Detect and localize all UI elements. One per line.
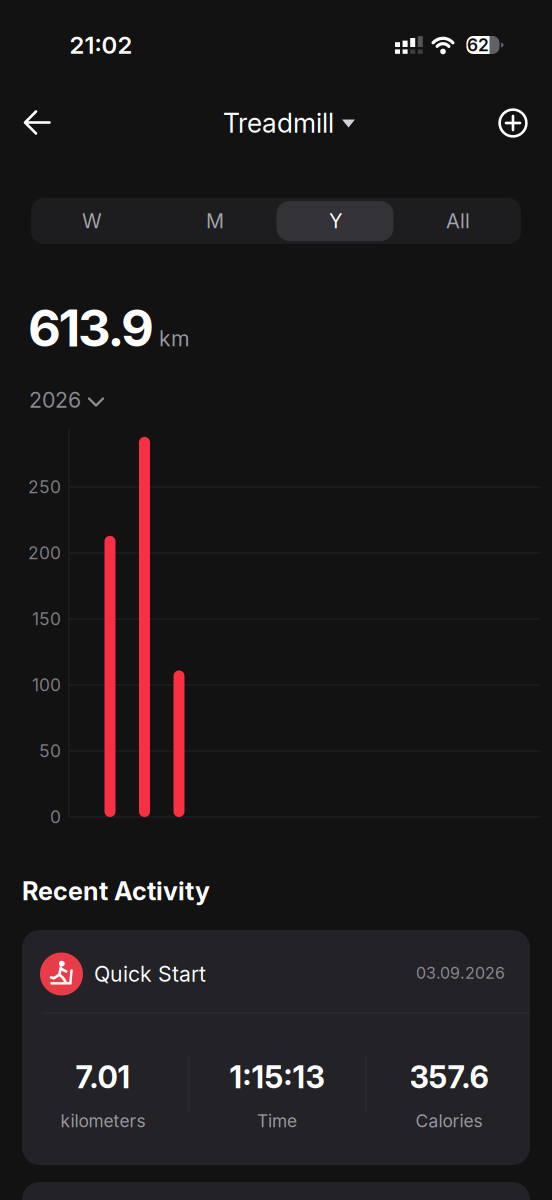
button[interactable]: W: [31, 198, 153, 244]
staticText: kilometers: [60, 1111, 145, 1131]
staticText: 357.6: [409, 1059, 488, 1095]
staticText: 1:15:13: [229, 1059, 324, 1095]
staticText: 7.01: [75, 1059, 130, 1095]
staticText: km: [159, 326, 190, 351]
staticText: 0: [50, 807, 61, 827]
staticText: 200: [28, 543, 61, 563]
staticText: All: [446, 209, 470, 233]
staticText: 03.09.2026: [416, 964, 505, 982]
staticText: Time: [257, 1111, 297, 1131]
button[interactable]: Back: [11, 98, 62, 147]
staticText: Recent Activity: [22, 876, 210, 906]
staticText: 2026: [29, 387, 81, 413]
staticText: 250: [28, 477, 61, 497]
button[interactable]: All: [397, 198, 519, 244]
staticText: 100: [32, 675, 61, 695]
staticText: 21:02: [69, 31, 132, 59]
staticText: 150: [32, 609, 61, 629]
button[interactable]: Y: [275, 198, 397, 244]
button[interactable]: Add workout: [490, 100, 536, 146]
staticText: Y: [329, 209, 343, 233]
staticText: 50: [39, 741, 61, 761]
staticText: Quick Start: [94, 961, 206, 987]
staticText: Calories: [415, 1111, 482, 1131]
staticText: M: [206, 209, 224, 233]
staticText: 62: [467, 35, 489, 55]
button[interactable]: M: [154, 198, 276, 244]
staticText: Treadmill: [223, 107, 334, 139]
button[interactable]: Quick Start: [22, 930, 530, 1165]
button[interactable]: 2026: [29, 387, 189, 413]
staticText: W: [82, 209, 102, 233]
staticText: 613.9: [28, 298, 154, 358]
button[interactable]: Treadmill: [223, 107, 355, 139]
